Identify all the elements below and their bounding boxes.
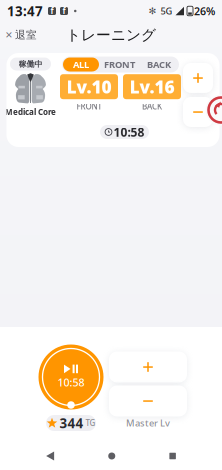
staticText: f	[50, 6, 53, 16]
staticText: 退室	[15, 28, 37, 41]
button[interactable]: FRONT	[99, 57, 140, 71]
button[interactable]: Play or pause training	[38, 344, 103, 409]
staticText: Lv.10	[66, 75, 111, 98]
button[interactable]: ✕	[0, 23, 43, 47]
button[interactable]: Back	[38, 443, 62, 468]
staticText: 13:47	[7, 2, 43, 20]
button[interactable]: Recent apps	[161, 445, 184, 467]
staticText: 26%	[194, 4, 215, 18]
staticText: Lv.16	[129, 75, 174, 98]
button[interactable]: Increase level	[183, 63, 213, 93]
staticText: Master Lv	[126, 417, 170, 429]
button[interactable]: Home	[100, 444, 123, 467]
staticText: FRONT	[104, 58, 135, 71]
staticText: 10:58	[57, 375, 84, 389]
button[interactable]: Increase master level	[109, 351, 187, 382]
staticText: 344	[59, 414, 83, 432]
staticText: ✕	[5, 30, 13, 40]
staticText: ALL	[73, 58, 89, 71]
staticText: 10:58	[113, 124, 144, 140]
staticText: FRONT	[76, 101, 101, 112]
staticText: BACK	[147, 58, 171, 71]
staticText: BACK	[142, 101, 162, 112]
button[interactable]: Decrease master level	[109, 385, 187, 416]
button[interactable]: Decrease level	[183, 97, 213, 127]
staticText: ✻	[148, 6, 156, 16]
staticText: TG	[85, 418, 95, 428]
staticText: 稼働中	[18, 59, 42, 69]
button[interactable]: ALL	[63, 57, 99, 71]
button[interactable]: BACK	[140, 57, 178, 71]
staticText: 5G	[160, 5, 172, 17]
staticText: Medical Core	[5, 107, 56, 117]
staticText: トレーニング	[66, 26, 156, 44]
staticText: f	[62, 6, 65, 16]
